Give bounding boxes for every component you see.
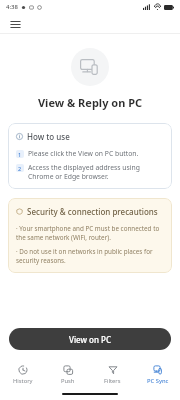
staticText: Access the displayed address using Chrom… (28, 163, 164, 181)
staticText: View on PC (69, 334, 111, 345)
button[interactable]: Menu (7, 16, 23, 32)
button[interactable]: History (0, 362, 45, 388)
staticText: PC Sync (147, 377, 169, 385)
staticText: How to use (27, 131, 70, 142)
staticText: History (13, 377, 33, 385)
button[interactable]: Filters (90, 362, 135, 388)
staticText: 1 (18, 151, 22, 158)
staticText: · Do not use it on networks in public pl… (16, 247, 164, 265)
staticText: Push (61, 377, 75, 385)
staticText: View & Reply on PC (0, 95, 180, 110)
staticText: Please click the View on PC button. (28, 149, 139, 158)
staticText: 2 (18, 165, 22, 172)
staticText: 4:38 (6, 3, 18, 11)
staticText: Filters (104, 377, 121, 385)
button[interactable]: Push (45, 362, 90, 388)
button[interactable]: PC Sync (135, 362, 180, 388)
staticText: · Your smartphone and PC must be connect… (16, 224, 164, 242)
staticText: Security & connection precautions (27, 206, 158, 217)
button[interactable]: View on PC (9, 328, 171, 350)
